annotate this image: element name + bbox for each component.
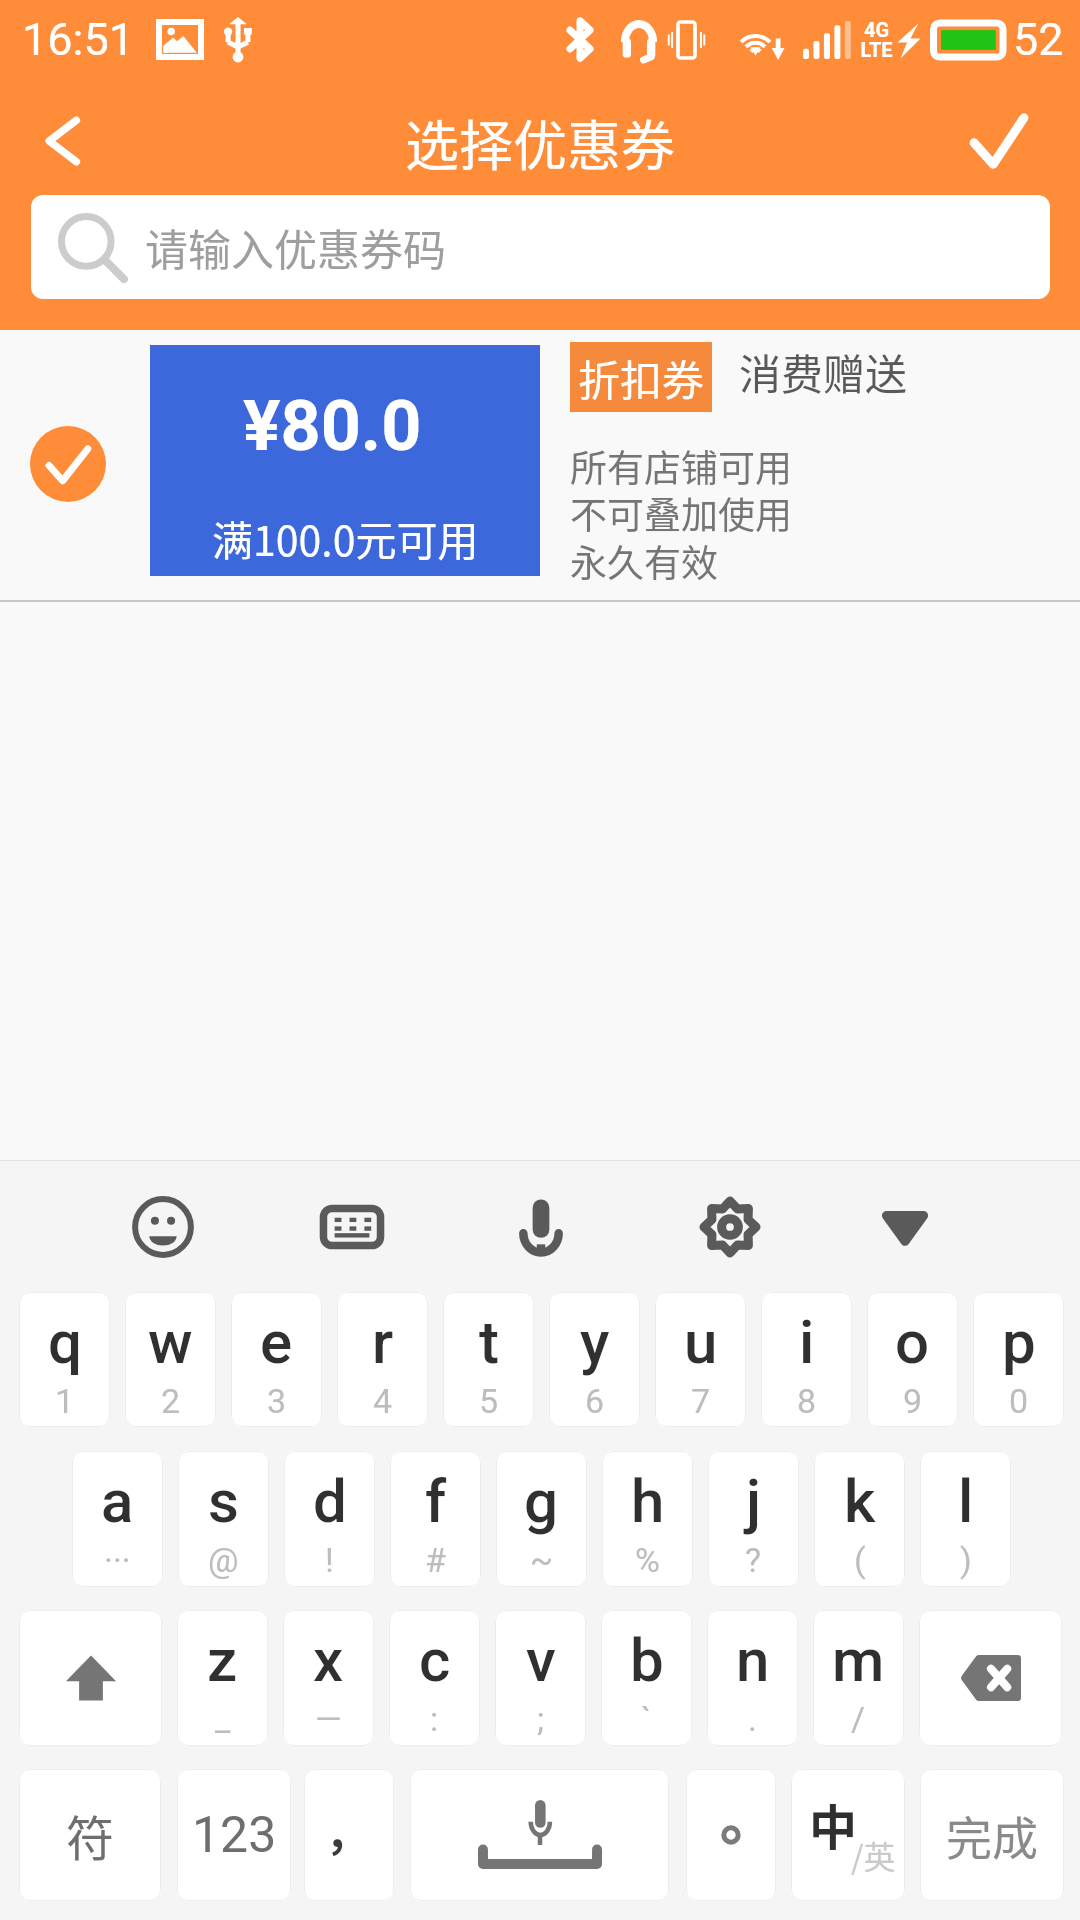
staticText: h — [631, 1466, 665, 1536]
button[interactable]: d — [284, 1451, 375, 1587]
button[interactable]: a — [72, 1451, 163, 1587]
button[interactable]: b — [601, 1610, 692, 1746]
staticText: r — [372, 1307, 394, 1377]
button[interactable]: Shift — [19, 1610, 162, 1746]
button[interactable]: 完成 — [920, 1769, 1064, 1901]
button[interactable]: Backspace — [919, 1610, 1062, 1746]
staticText: p — [1002, 1307, 1036, 1377]
staticText: ; — [537, 1699, 545, 1739]
staticText: 请输入优惠券码 — [145, 216, 446, 278]
button[interactable]: u — [655, 1292, 746, 1427]
button[interactable]: Settings — [685, 1182, 775, 1272]
staticText: 8 — [797, 1381, 817, 1421]
button[interactable]: s — [178, 1451, 269, 1587]
staticText: 中 — [809, 1789, 858, 1859]
button[interactable]: v — [495, 1610, 586, 1746]
staticText: 4 — [373, 1381, 393, 1421]
button[interactable]: Voice input — [496, 1182, 586, 1272]
button[interactable]: x — [283, 1610, 374, 1746]
staticText: 9 — [903, 1381, 923, 1421]
button[interactable]: j — [708, 1451, 799, 1587]
staticText: v — [526, 1625, 556, 1695]
staticText: z — [207, 1625, 238, 1695]
button[interactable]: t — [443, 1292, 534, 1427]
staticText: n — [736, 1625, 770, 1695]
staticText: 3 — [267, 1381, 287, 1421]
staticText: b — [630, 1625, 664, 1695]
staticText: ? — [745, 1540, 762, 1580]
staticText: u — [684, 1307, 718, 1377]
button[interactable]: Emoji — [118, 1182, 208, 1272]
staticText: a — [101, 1466, 134, 1536]
button[interactable]: Hide keyboard — [860, 1182, 950, 1272]
button[interactable]: p — [973, 1292, 1064, 1427]
staticText: e — [260, 1307, 293, 1377]
staticText: s — [208, 1466, 239, 1536]
button[interactable]: n — [707, 1610, 798, 1746]
staticText: 52 — [1013, 13, 1064, 66]
button[interactable]: k — [814, 1451, 905, 1587]
staticText: o — [895, 1307, 930, 1377]
button[interactable]: m — [813, 1610, 904, 1746]
button[interactable]: Keyboard layout — [307, 1182, 397, 1272]
staticText: ， — [325, 1799, 369, 1863]
button[interactable]: g — [496, 1451, 587, 1587]
button[interactable]: c — [389, 1610, 480, 1746]
button[interactable]: ¥80.0 — [0, 330, 1080, 600]
staticText: : — [430, 1699, 439, 1739]
staticText: i — [799, 1307, 815, 1377]
staticText: 6 — [585, 1381, 605, 1421]
staticText: l — [958, 1466, 974, 1536]
button[interactable]: y — [549, 1292, 640, 1427]
staticText: 5 — [479, 1381, 499, 1421]
staticText: ` — [641, 1699, 652, 1739]
button[interactable]: 123 — [177, 1769, 291, 1901]
button[interactable]: Back — [22, 101, 102, 181]
button[interactable] — [686, 1769, 776, 1901]
staticText: g — [524, 1466, 559, 1536]
staticText: y — [580, 1307, 610, 1377]
staticText: ~ — [530, 1540, 554, 1580]
staticText: k — [844, 1466, 876, 1536]
button[interactable]: 符 — [19, 1769, 161, 1901]
button[interactable]: h — [602, 1451, 693, 1587]
staticText: 折扣券 — [578, 347, 705, 408]
button[interactable]: Confirm — [970, 112, 1028, 170]
other: Shift — [58, 1645, 124, 1711]
staticText: % — [635, 1540, 660, 1580]
staticText: / — [851, 1699, 866, 1739]
staticText: 消费赠送 — [739, 341, 908, 402]
button[interactable]: o — [867, 1292, 958, 1427]
button[interactable]: e — [231, 1292, 322, 1427]
button[interactable]: i — [761, 1292, 852, 1427]
staticText: 0 — [1009, 1381, 1029, 1421]
button[interactable]: q — [19, 1292, 110, 1427]
staticText: 满100.0元可用 — [212, 508, 479, 567]
button[interactable]: f — [390, 1451, 481, 1587]
button[interactable]: 中 — [791, 1769, 905, 1901]
staticText: ( — [854, 1540, 866, 1580]
button[interactable]: z — [177, 1610, 268, 1746]
staticText: 4G LTE — [860, 18, 893, 62]
staticText: 符 — [66, 1800, 115, 1870]
button[interactable]: 请输入优惠券码 — [31, 195, 1050, 299]
staticText: 选择优惠券 — [405, 103, 675, 181]
staticText: 所有店铺可用 不可叠加使用 永久有效 — [570, 439, 792, 588]
staticText: j — [746, 1466, 762, 1536]
staticText: 123 — [192, 1806, 277, 1865]
staticText: x — [313, 1625, 344, 1695]
button[interactable]: Space — [410, 1769, 669, 1901]
other: Backspace — [962, 1645, 1020, 1711]
staticText: c — [419, 1625, 451, 1695]
button[interactable]: l — [920, 1451, 1011, 1587]
staticText: @ — [208, 1540, 239, 1580]
button[interactable]: ， — [304, 1769, 394, 1901]
staticText: t — [479, 1307, 499, 1377]
staticText: q — [48, 1307, 82, 1377]
button[interactable]: r — [337, 1292, 428, 1427]
staticText: 完成 — [946, 1802, 1038, 1869]
staticText: ··· — [104, 1540, 131, 1580]
staticText: ! — [325, 1540, 334, 1580]
button[interactable]: w — [125, 1292, 216, 1427]
staticText: ) — [960, 1540, 972, 1580]
